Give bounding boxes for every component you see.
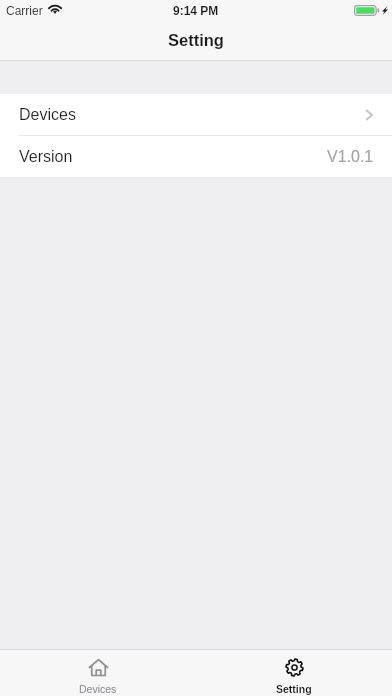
staticText: Setting xyxy=(276,683,312,695)
other: Battery xyxy=(354,5,379,16)
other: Charging xyxy=(382,6,388,15)
staticText: Devices xyxy=(19,106,76,124)
staticText: V1.0.1 xyxy=(327,148,374,166)
staticText: Version xyxy=(19,148,73,166)
staticText: Carrier xyxy=(6,4,43,17)
button[interactable]: Setting xyxy=(196,650,392,696)
other: Setting xyxy=(285,658,304,677)
staticText: 9:14 PM xyxy=(173,4,219,17)
other: Devices xyxy=(89,658,108,677)
other: Wi-Fi signal xyxy=(48,3,62,14)
button[interactable]: Devices xyxy=(0,650,196,696)
staticText: Setting xyxy=(168,31,224,49)
button[interactable]: Version xyxy=(0,136,392,177)
other: Open Devices xyxy=(365,109,373,121)
staticText: Devices xyxy=(79,683,117,695)
button[interactable]: Devices xyxy=(0,94,392,135)
